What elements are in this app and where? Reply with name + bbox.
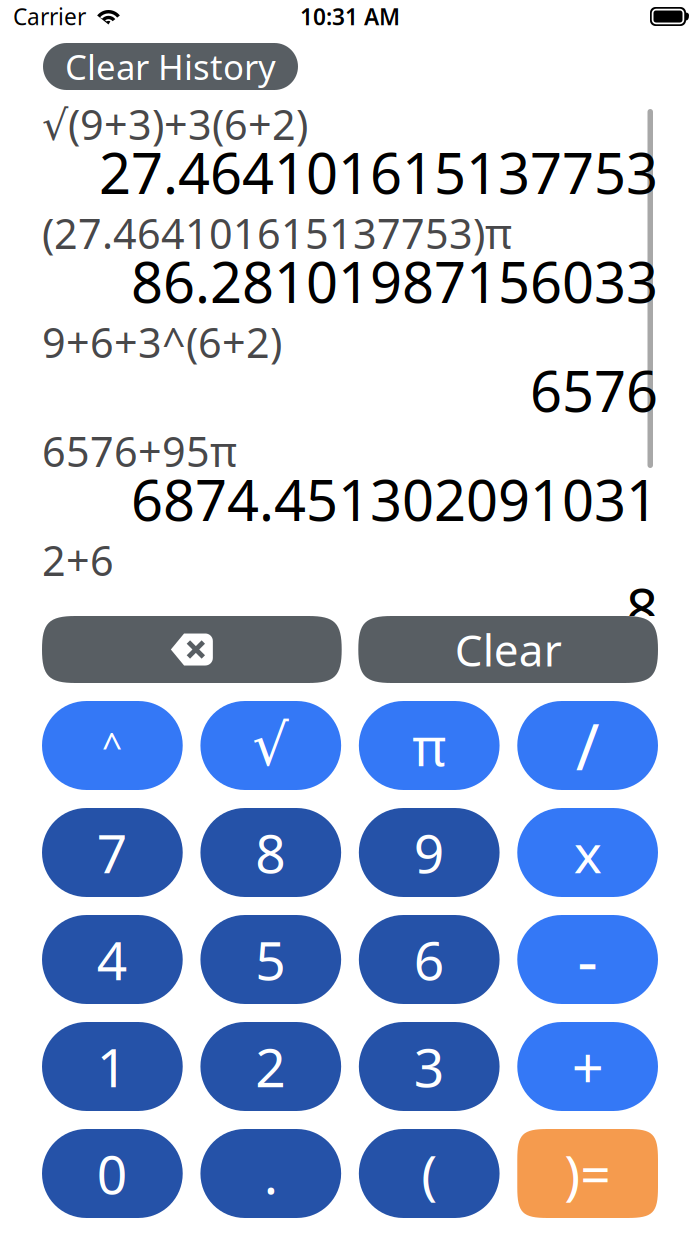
button[interactable]: 4 [42,915,183,1004]
staticText: - [577,917,598,1002]
staticText: 2 [255,1031,286,1102]
staticText: 1 [97,1031,128,1102]
staticText: 10:31 AM [300,1,400,31]
button[interactable]: 0 [42,1129,183,1218]
button[interactable]: Clear [358,616,658,683]
staticText: 6576+95π [42,424,237,478]
button[interactable]: 3 [359,1022,499,1111]
staticText: 8 [255,817,286,888]
staticText: 9 [414,817,445,888]
staticText: + [572,1029,604,1104]
staticText: Clear History [65,43,276,89]
staticText: 2+6 [42,533,114,587]
staticText: 7 [97,817,128,888]
staticText: 8 [626,571,658,645]
staticText: Clear [455,620,562,679]
staticText: 5 [255,924,286,995]
button[interactable]: 9 [359,808,499,897]
staticText: / [576,703,600,788]
button[interactable]: / [517,701,658,790]
staticText: Carrier [13,1,86,31]
staticText: 6 [414,924,445,995]
button[interactable]: π [359,701,499,790]
staticText: 4 [97,924,128,995]
staticText: ^ [102,722,123,769]
staticText: 86.28101987156033 [131,244,658,318]
button[interactable]: Clear History [43,43,298,90]
button[interactable]: 5 [200,915,341,1004]
staticText: x [574,817,602,888]
staticText: 27.464101615137753 [99,135,658,209]
staticText: 9+6+3^(6+2) [42,315,282,369]
staticText: 3 [414,1031,445,1102]
button[interactable]: ( [359,1129,499,1218]
button[interactable]: 2 [200,1022,341,1111]
staticText: √ [252,713,289,778]
button[interactable]: 6 [359,915,499,1004]
staticText: 0 [97,1138,128,1209]
button[interactable]: - [517,915,658,1004]
button[interactable]: 1 [42,1022,183,1111]
button[interactable]: 8 [200,808,341,897]
staticText: ( [421,1138,437,1209]
staticText: √(9+3)+3(6+2) [42,97,308,151]
button[interactable]: √ [200,701,341,790]
button[interactable]: + [517,1022,658,1111]
staticText: (27.464101615137753)π [42,206,512,260]
button[interactable]: )= [517,1129,658,1218]
button[interactable]: x [517,808,658,897]
button[interactable]: Delete [42,616,342,683]
button[interactable]: 7 [42,808,183,897]
staticText: 6576 [530,353,658,427]
button[interactable]: . [200,1129,341,1218]
staticText: . [264,1138,278,1209]
button[interactable]: ^ [42,701,183,790]
staticText: )= [564,1138,611,1209]
staticText: π [412,711,446,780]
staticText: 6874.451302091031 [131,462,658,536]
